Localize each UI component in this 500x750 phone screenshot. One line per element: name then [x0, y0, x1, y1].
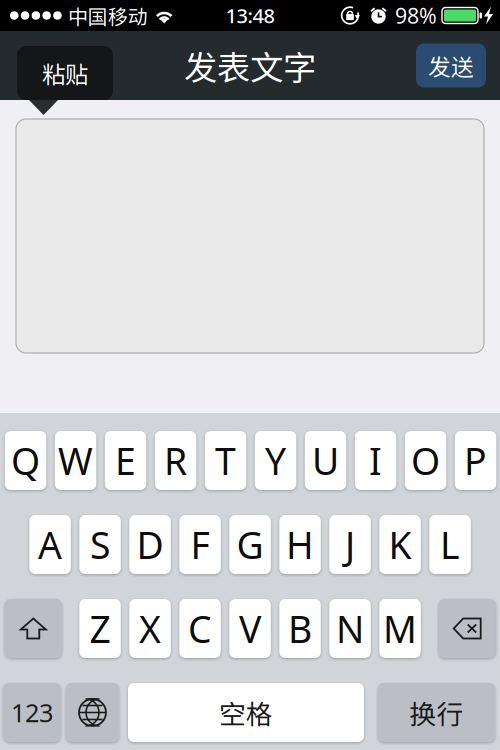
- staticText: X: [139, 604, 161, 653]
- staticText: Y: [265, 436, 286, 485]
- button[interactable]: X: [129, 599, 171, 658]
- button[interactable]: J: [329, 515, 371, 574]
- staticText: V: [239, 604, 261, 653]
- staticText: N: [336, 604, 364, 653]
- staticText: Z: [89, 604, 110, 653]
- button[interactable]: S: [79, 515, 121, 574]
- staticText: 发表文字: [184, 41, 316, 90]
- staticText: 中国移动: [68, 1, 148, 30]
- staticText: T: [215, 436, 236, 485]
- staticText: 123: [11, 696, 53, 729]
- staticText: A: [38, 520, 62, 569]
- button[interactable]: 取消: [0, 39, 66, 92]
- staticText: D: [137, 520, 164, 569]
- staticText: G: [237, 520, 264, 569]
- button[interactable]: Delete: [439, 599, 496, 658]
- staticText: J: [345, 520, 355, 569]
- button[interactable]: 空格: [128, 683, 364, 742]
- button[interactable]: Return: [378, 683, 495, 742]
- button[interactable]: L: [429, 515, 471, 574]
- staticText: H: [286, 520, 314, 569]
- button[interactable]: K: [379, 515, 421, 574]
- button[interactable]: Switch keyboard: [66, 683, 119, 742]
- staticText: W: [58, 436, 93, 485]
- button[interactable]: C: [179, 599, 221, 658]
- button[interactable]: G: [229, 515, 271, 574]
- button[interactable]: U: [305, 431, 346, 490]
- button[interactable]: E: [105, 431, 146, 490]
- button[interactable]: 发送: [416, 43, 486, 87]
- button[interactable]: Numbers: [3, 683, 60, 742]
- staticText: F: [191, 520, 210, 569]
- button[interactable]: Q: [5, 431, 46, 490]
- button[interactable]: A: [29, 515, 71, 574]
- button[interactable]: Z: [79, 599, 121, 658]
- button[interactable]: F: [179, 515, 221, 574]
- staticText: E: [115, 436, 136, 485]
- button[interactable]: I: [355, 431, 396, 490]
- button[interactable]: Y: [255, 431, 296, 490]
- button[interactable]: V: [229, 599, 271, 658]
- staticText: 13:48: [225, 2, 274, 29]
- staticText: C: [188, 604, 212, 653]
- staticText: K: [389, 520, 412, 569]
- staticText: B: [288, 604, 312, 653]
- staticText: 空格: [219, 693, 273, 732]
- staticText: 98%: [395, 1, 437, 30]
- staticText: I: [369, 436, 382, 485]
- staticText: 发送: [428, 49, 474, 82]
- staticText: P: [464, 436, 487, 485]
- staticText: U: [312, 436, 339, 485]
- button[interactable]: P: [455, 431, 496, 490]
- staticText: 粘贴: [42, 56, 88, 90]
- button[interactable]: D: [129, 515, 171, 574]
- staticText: Q: [11, 436, 40, 485]
- button[interactable]: O: [405, 431, 446, 490]
- button[interactable]: R: [155, 431, 196, 490]
- button[interactable]: B: [279, 599, 321, 658]
- button[interactable]: W: [55, 431, 96, 490]
- button[interactable]: H: [279, 515, 321, 574]
- button[interactable]: M: [379, 599, 421, 658]
- staticText: 换行: [409, 693, 463, 732]
- button[interactable]: Shift: [5, 599, 62, 658]
- staticText: S: [90, 520, 110, 569]
- button[interactable]: T: [205, 431, 246, 490]
- staticText: 取消: [20, 49, 66, 82]
- staticText: M: [383, 604, 417, 653]
- staticText: O: [411, 436, 440, 485]
- staticText: L: [440, 520, 460, 569]
- staticText: R: [164, 436, 187, 485]
- button[interactable]: N: [329, 599, 371, 658]
